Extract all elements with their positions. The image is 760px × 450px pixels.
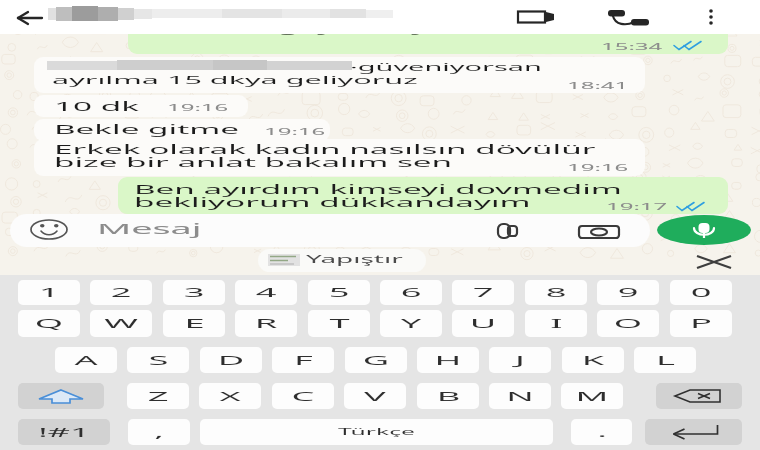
staticText: bize bir anlat bakalım sen [54,154,453,171]
button[interactable] [118,177,728,214]
button[interactable]: L [634,347,696,373]
staticText: 1 [37,284,61,301]
button[interactable]: F [272,347,334,373]
staticText: Yapıştır [306,252,404,266]
button[interactable]: Backspace [656,383,742,409]
staticText: bekliyorum dükkandayım [134,194,533,211]
staticText: A [74,352,98,369]
staticText: 2 [109,284,133,301]
staticText: J [514,352,526,369]
staticText: Bekle gitme [54,121,240,138]
button[interactable] [128,14,728,54]
button[interactable] [34,139,645,176]
button[interactable]: D [200,347,262,373]
button[interactable]: Camera [568,218,620,244]
button[interactable]: Voice message [657,214,751,246]
staticText: N [505,388,534,405]
button[interactable]: 2 [90,280,152,305]
staticText: K [581,352,605,369]
button[interactable]: Enter [645,419,742,445]
staticText: Türkçe [337,426,416,438]
staticText: Ben ayırdım kimseyi dovmedim [134,181,623,198]
staticText: kadın doğaya ihtiyacı olmaz kı [143,19,611,36]
button[interactable]: V [344,383,406,409]
staticText: H [433,352,462,369]
button[interactable]: O [597,310,659,337]
button[interactable]: Z [127,383,189,409]
button[interactable]: 6 [380,280,442,305]
button[interactable]: N [489,383,551,409]
staticText: U [468,315,497,332]
button[interactable]: More options [698,4,724,30]
button[interactable]: I [525,310,587,337]
staticText: Erkek olarak kadın nasılsın dövülür [54,141,597,158]
staticText: Z [146,388,170,405]
button[interactable]: . [571,419,632,445]
staticText: 19:17 [606,200,670,212]
button[interactable]: B [417,383,479,409]
button[interactable]: M [561,383,623,409]
staticText: W [104,315,138,332]
staticText: B [435,388,462,405]
button[interactable] [34,95,248,117]
button[interactable]: T [308,310,370,337]
button[interactable]: S [127,347,189,373]
button[interactable]: , [128,419,190,445]
staticText: . [596,424,608,441]
button[interactable]: X [199,383,261,409]
button[interactable]: G [345,347,407,373]
button[interactable]: 7 [452,280,514,305]
button[interactable]: 5 [308,280,370,305]
staticText: F [293,352,314,369]
button[interactable]: Back [10,4,50,30]
button[interactable]: 1 [18,280,80,305]
button[interactable] [34,57,645,93]
staticText: !#1 [38,424,90,440]
button[interactable]: !#1 [18,419,110,445]
staticText: M [575,388,609,405]
button[interactable]: 0 [670,280,732,305]
button[interactable]: K [562,347,624,373]
button[interactable]: P [670,310,732,337]
button[interactable]: Q [18,310,80,337]
button[interactable]: C [272,383,334,409]
button[interactable]: A [55,347,117,373]
staticText: T [329,315,350,332]
staticText: P [689,315,713,332]
staticText: V [363,388,387,405]
staticText: ayrılma 15 dkya geliyoruz [52,72,419,88]
staticText: Y [399,315,423,332]
button[interactable]: 9 [597,280,659,305]
button[interactable]: Video call [510,6,560,28]
staticText: I [549,315,564,332]
button[interactable]: U [452,310,514,337]
button[interactable]: 3 [163,280,225,305]
button[interactable]: 8 [525,280,587,305]
button[interactable]: Close [692,250,736,274]
staticText: , [153,424,165,441]
staticText: G [361,352,390,369]
button[interactable]: H [417,347,479,373]
button[interactable]: Voice call [606,4,652,30]
button[interactable]: W [90,310,152,337]
staticText: 10 dk [54,98,139,115]
button[interactable]: Attach [492,218,532,244]
staticText: 19:16 [567,161,631,173]
staticText: 7 [471,284,495,301]
staticText: O [613,315,642,332]
staticText: X [218,388,242,405]
button[interactable]: J [489,347,551,373]
button[interactable]: Y [380,310,442,337]
button[interactable]: Mesaj [10,214,650,247]
button[interactable]: R [235,310,297,337]
button[interactable]: E [163,310,225,337]
button[interactable]: Yapıştır [258,249,426,272]
button[interactable]: Shift [18,383,104,409]
staticText: 19:16 [167,101,231,113]
staticText: Mesaj [97,219,203,238]
button[interactable]: Türkçe [200,419,553,445]
staticText: D [216,352,245,369]
button[interactable] [34,119,330,141]
button[interactable]: 4 [235,280,297,305]
staticText: E [184,315,205,332]
